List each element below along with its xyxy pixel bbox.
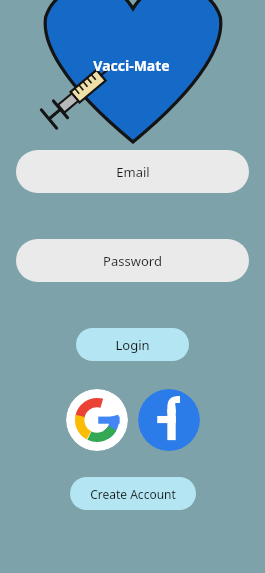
button[interactable]: Sign in with Facebook [138, 389, 200, 451]
button[interactable]: Create Account [70, 477, 196, 510]
staticText: Login [115, 336, 150, 354]
staticText: Vacci-Mate [93, 56, 170, 75]
staticText: Create Account [90, 486, 176, 502]
button[interactable]: Email [16, 150, 249, 193]
staticText: Email [116, 163, 150, 181]
button[interactable]: Sign in with Google [66, 389, 128, 451]
button[interactable]: Password [16, 239, 249, 282]
staticText: Password [103, 252, 162, 270]
button[interactable]: Login [76, 328, 189, 361]
